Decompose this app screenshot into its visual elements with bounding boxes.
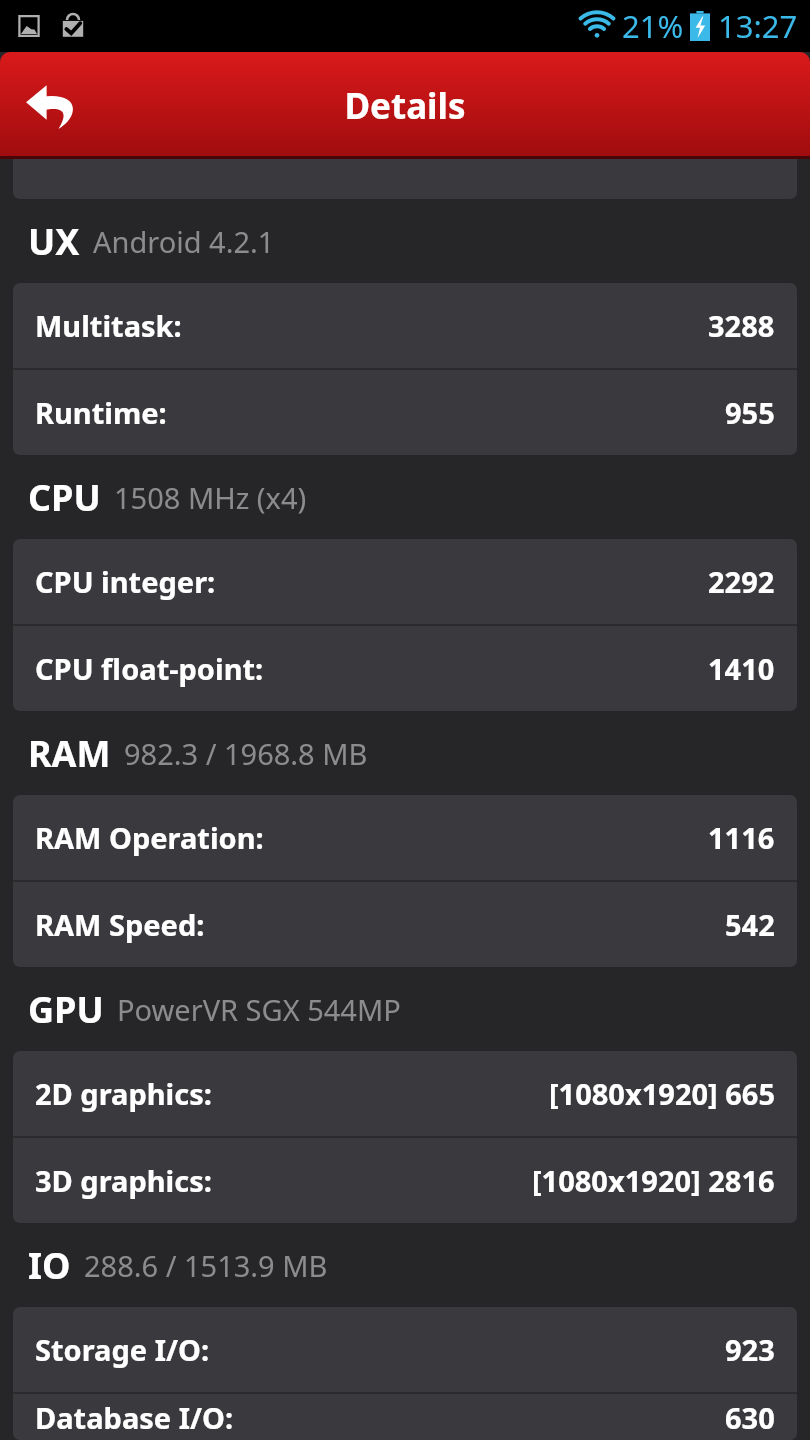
staticText: 1410 xyxy=(708,649,775,688)
staticText: Storage I/O: xyxy=(35,1330,210,1369)
staticText: 2D graphics: xyxy=(35,1074,212,1113)
staticText: Android 4.2.1 xyxy=(93,222,275,261)
staticText: [1080x1920] 665 xyxy=(549,1074,775,1113)
button[interactable]: 2D graphics: xyxy=(13,1051,797,1136)
staticText: 2292 xyxy=(708,562,775,601)
button[interactable]: RAM Operation: xyxy=(13,795,797,880)
staticText: 630 xyxy=(725,1398,775,1437)
button[interactable]: Runtime: xyxy=(13,370,797,455)
staticText: 13:27 xyxy=(718,5,798,47)
staticText: 1116 xyxy=(708,818,775,857)
staticText: CPU float-point: xyxy=(35,649,264,688)
staticText: RAM Speed: xyxy=(35,905,205,944)
staticText: 3D graphics: xyxy=(35,1161,212,1200)
button[interactable]: CPU float-point: xyxy=(13,626,797,711)
staticText: [1080x1920] 2816 xyxy=(532,1161,775,1200)
staticText: Multitask: xyxy=(35,306,182,345)
staticText: Database I/O: xyxy=(35,1398,234,1437)
staticText: 542 xyxy=(725,905,775,944)
button[interactable]: 3D graphics: xyxy=(13,1138,797,1223)
button[interactable]: Storage I/O: xyxy=(13,1307,797,1392)
button[interactable]: RAM Speed: xyxy=(13,882,797,967)
staticText: IO xyxy=(28,1241,71,1290)
staticText: UX xyxy=(28,217,80,266)
staticText: CPU integer: xyxy=(35,562,216,601)
staticText: CPU xyxy=(28,473,101,522)
button[interactable]: Multitask: xyxy=(13,283,797,368)
staticText: Runtime: xyxy=(35,393,167,432)
staticText: RAM xyxy=(28,729,111,778)
staticText: 3288 xyxy=(708,306,775,345)
button[interactable]: Database I/O: xyxy=(13,1394,797,1440)
staticText: 1508 MHz (x4) xyxy=(114,478,307,517)
staticText: 923 xyxy=(725,1330,775,1369)
staticText: 955 xyxy=(725,393,775,432)
button[interactable]: CPU integer: xyxy=(13,539,797,624)
staticText: GPU xyxy=(28,985,104,1034)
staticText: 21% xyxy=(622,5,684,47)
button[interactable]: Back xyxy=(0,52,104,159)
staticText: 982.3 / 1968.8 MB xyxy=(124,734,368,773)
staticText: Details xyxy=(344,82,466,130)
staticText: PowerVR SGX 544MP xyxy=(117,990,401,1029)
staticText: RAM Operation: xyxy=(35,818,264,857)
staticText: 288.6 / 1513.9 MB xyxy=(84,1246,328,1285)
